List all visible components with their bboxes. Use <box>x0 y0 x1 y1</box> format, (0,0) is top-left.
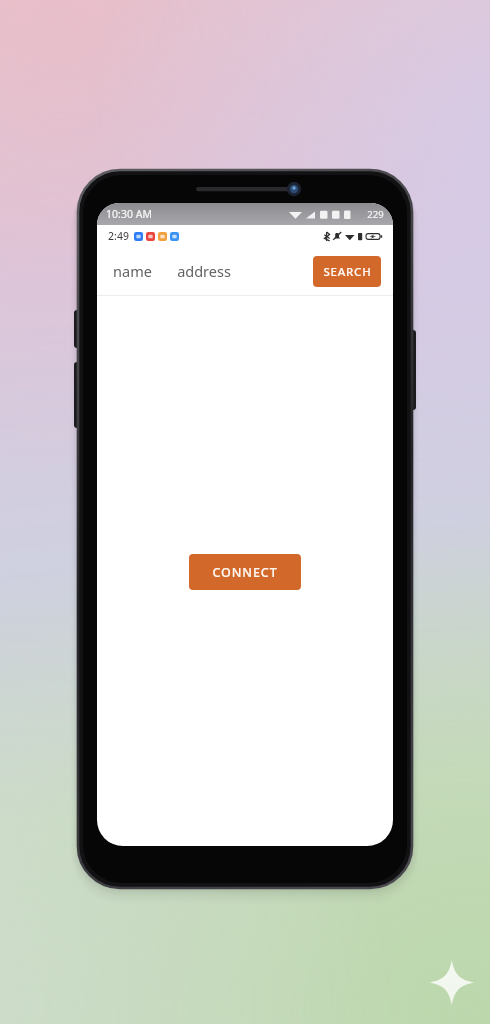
button[interactable]: address <box>177 254 259 288</box>
staticText: name <box>113 261 152 281</box>
button[interactable]: name <box>113 254 169 288</box>
staticText: 2:49 <box>108 229 129 243</box>
staticText: 229 <box>367 208 384 221</box>
button[interactable]: CONNECT <box>189 554 301 590</box>
staticText: CONNECT <box>212 564 278 581</box>
staticText: address <box>177 261 231 281</box>
staticText: 10:30 AM <box>106 207 152 221</box>
button[interactable]: SEARCH <box>313 256 381 287</box>
staticText: SEARCH <box>323 264 372 280</box>
